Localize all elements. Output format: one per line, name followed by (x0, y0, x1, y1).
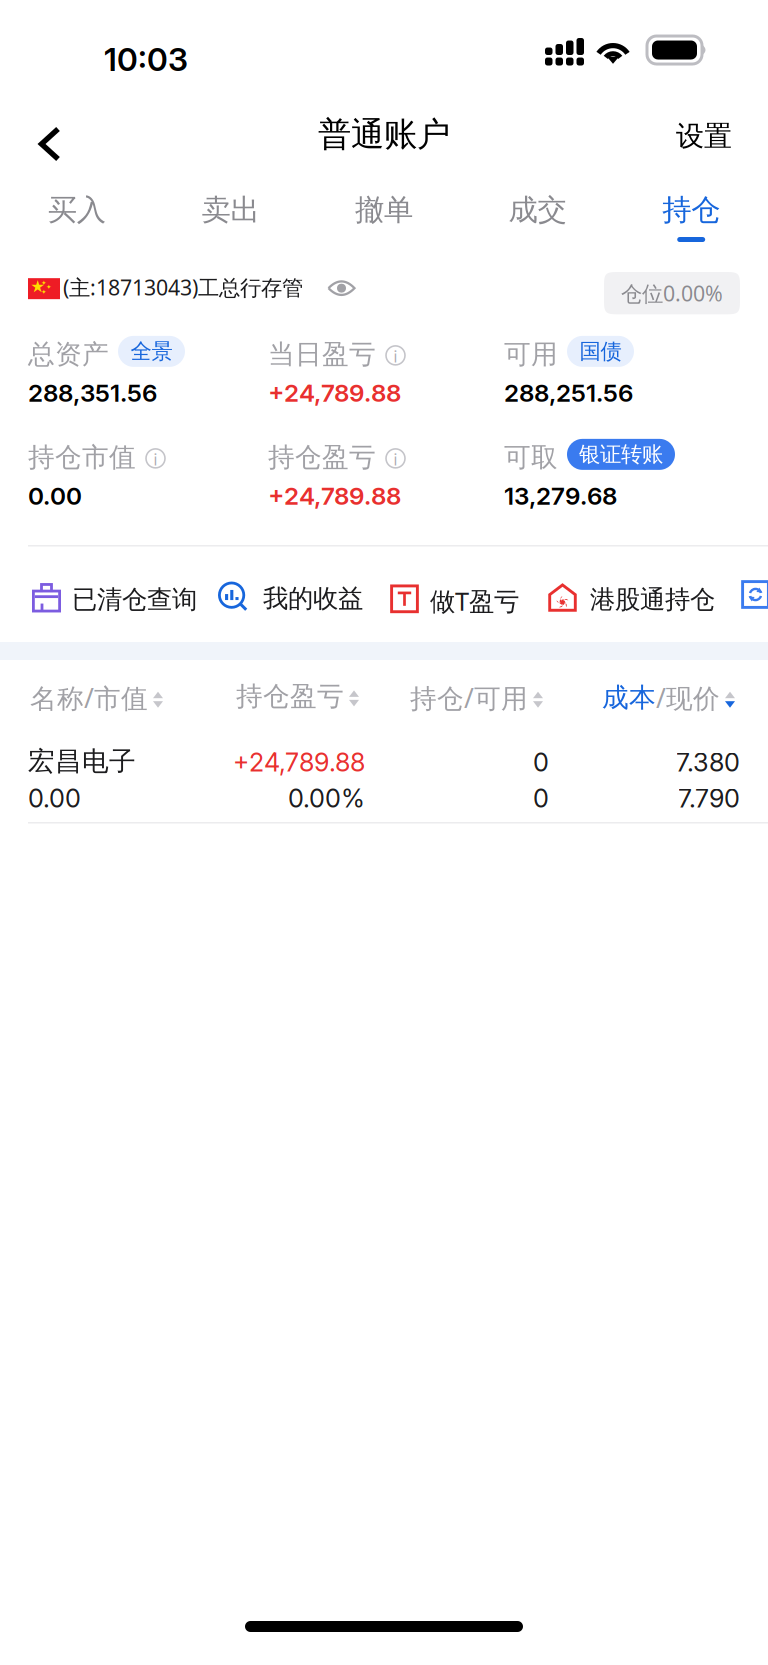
staticText: 持仓盈亏 (268, 441, 376, 474)
staticText: i (393, 347, 397, 366)
staticText: 普通账户 (318, 114, 450, 155)
staticText: 设置 (676, 119, 732, 153)
button[interactable]: 名称/市值 (30, 666, 163, 729)
staticText: 做T盈亏 (430, 584, 519, 618)
button[interactable]: 我的收益 (218, 567, 363, 626)
staticText: 宏昌电子 (28, 745, 136, 778)
staticText: 仓位0.00% (621, 279, 723, 307)
staticText: 可用 (504, 338, 558, 371)
staticText: 国债 (579, 338, 621, 364)
staticText: 288,251.56 (504, 378, 633, 407)
button[interactable]: 成交 (461, 188, 614, 258)
button[interactable]: 港股通持仓 (548, 568, 715, 627)
button[interactable]: 已清仓查询 (32, 568, 197, 627)
staticText: 已清仓查询 (72, 584, 197, 615)
staticText: 卖出 (201, 192, 259, 228)
staticText: 银证转账 (579, 441, 663, 467)
button[interactable]: 宏昌电子 持仓 (0, 719, 768, 820)
staticText: 0.00% (288, 783, 365, 814)
button[interactable]: 持仓 (614, 188, 768, 258)
staticText: 全景 (130, 338, 172, 364)
button[interactable]: 持仓/可用 (410, 666, 543, 729)
staticText: 0.00 (28, 783, 81, 814)
button[interactable]: 返回 (20, 108, 79, 180)
staticText: +24,789.88 (268, 481, 401, 510)
staticText: +24,789.88 (233, 747, 365, 778)
button[interactable]: 成本 (602, 666, 735, 729)
staticText: ✦ (46, 283, 52, 291)
staticText: 撤单 (355, 192, 413, 228)
button[interactable]: 撤单 (307, 188, 461, 258)
staticText: 可取 (504, 441, 558, 474)
staticText: 持仓/可用 (410, 680, 528, 715)
staticText: 成本 (602, 681, 656, 714)
staticText: 名称/市值 (30, 680, 148, 715)
button[interactable]: 设置 (660, 103, 748, 169)
staticText: 持仓 (662, 192, 720, 228)
staticText: i (393, 450, 397, 469)
staticText: 7.790 (678, 783, 740, 814)
button[interactable]: 买入 (0, 188, 154, 258)
staticText: i (153, 450, 157, 469)
staticText: ★ (30, 278, 45, 296)
button[interactable]: ★ (28, 264, 356, 310)
staticText: (主:18713043)工总行存管 (63, 273, 303, 301)
button[interactable]: 做T盈亏 (390, 568, 519, 630)
staticText: 成交 (509, 192, 567, 228)
staticText: 总资产 (28, 338, 109, 371)
staticText: 0 (533, 783, 549, 814)
staticText: ✦ (41, 288, 47, 296)
staticText: 买入 (48, 192, 106, 228)
button[interactable]: 刷新 (741, 580, 768, 609)
staticText: +24,789.88 (268, 378, 401, 407)
button[interactable]: 持仓盈亏 (236, 666, 359, 727)
staticText: 持仓盈亏 (236, 680, 344, 713)
button[interactable]: 卖出 (154, 188, 307, 258)
staticText: ✦ (41, 279, 47, 287)
staticText: 0 (533, 747, 549, 778)
button[interactable]: 仓位0.00% (604, 272, 740, 314)
staticText: 10:03 (104, 40, 188, 79)
staticText: 我的收益 (263, 583, 363, 614)
staticText: 7.380 (676, 747, 740, 778)
staticText: /现价 (656, 680, 720, 715)
staticText: 当日盈亏 (268, 338, 376, 371)
staticText: 持仓市值 (28, 441, 136, 474)
staticText: 288,351.56 (28, 378, 157, 407)
staticText: 13,279.68 (504, 481, 617, 510)
staticText: 0.00 (28, 481, 82, 510)
staticText: 港股通持仓 (590, 584, 715, 615)
